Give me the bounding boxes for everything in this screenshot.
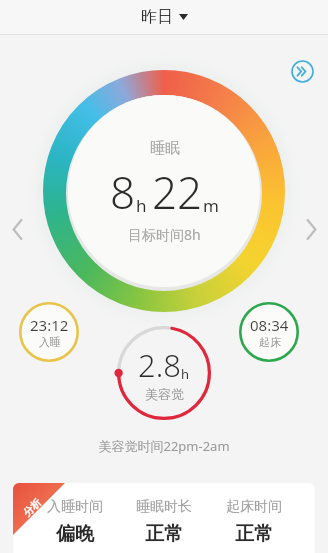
staticText: h — [181, 365, 190, 383]
staticText: 22 — [152, 162, 203, 222]
staticText: 起床时间 — [226, 498, 282, 516]
staticText: 正常 — [145, 522, 183, 546]
button[interactable]: 昨日 — [131, 3, 198, 31]
staticText: 睡眠时长 — [136, 498, 192, 516]
staticText: 正常 — [235, 522, 273, 546]
staticText: 昨日 — [141, 7, 173, 27]
staticText: 入睡时间 — [47, 498, 103, 516]
staticText: 2.8 — [138, 344, 181, 386]
staticText: 睡眠 — [150, 139, 180, 158]
button[interactable]: 睡眠 — [43, 70, 285, 312]
button[interactable]: Next — [286, 55, 318, 87]
staticText: 08:34 — [250, 315, 289, 335]
staticText: 入睡 — [39, 335, 61, 349]
button[interactable]: Next day — [296, 205, 326, 253]
button[interactable]: Wake up time — [238, 301, 300, 363]
staticText: h — [136, 194, 147, 217]
button[interactable]: 分析 — [13, 483, 315, 553]
button[interactable]: Fall asleep time — [18, 301, 80, 363]
staticText: 美容觉 — [145, 386, 184, 402]
staticText: 分析 — [20, 496, 44, 519]
staticText: 8 — [110, 162, 136, 222]
staticText: 23:12 — [30, 315, 69, 335]
button[interactable]: Previous day — [2, 205, 32, 253]
staticText: 美容觉时间22pm-2am — [0, 437, 328, 455]
staticText: 偏晚 — [56, 522, 94, 546]
staticText: 目标时间8h — [128, 225, 201, 244]
button[interactable]: 2.8 — [114, 323, 214, 423]
staticText: m — [203, 194, 219, 217]
staticText: 起床 — [259, 335, 281, 349]
